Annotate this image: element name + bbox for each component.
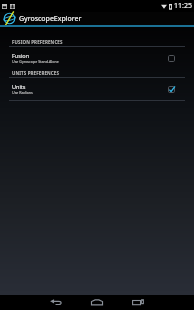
button[interactable]: Fusion — [0, 47, 194, 69]
button[interactable]: Back — [45, 295, 67, 310]
button[interactable]: Toggle preference — [166, 84, 177, 95]
button[interactable]: Home — [86, 295, 108, 310]
button[interactable]: Units — [0, 78, 194, 100]
staticText: Units — [12, 83, 26, 90]
staticText: FUSION PREFERENCES — [12, 39, 63, 45]
button[interactable]: Toggle preference — [166, 53, 177, 64]
staticText: GyroscopeExplorer — [19, 14, 82, 24]
staticText: Use Radians — [12, 90, 33, 95]
staticText: UNITS PREFERENCES — [12, 70, 60, 76]
button[interactable]: Recents — [127, 295, 149, 310]
staticText: Fusion — [12, 52, 30, 59]
staticText: 11:25 — [174, 1, 192, 11]
staticText: Use Gyroscope Stand-Alone — [12, 59, 59, 64]
